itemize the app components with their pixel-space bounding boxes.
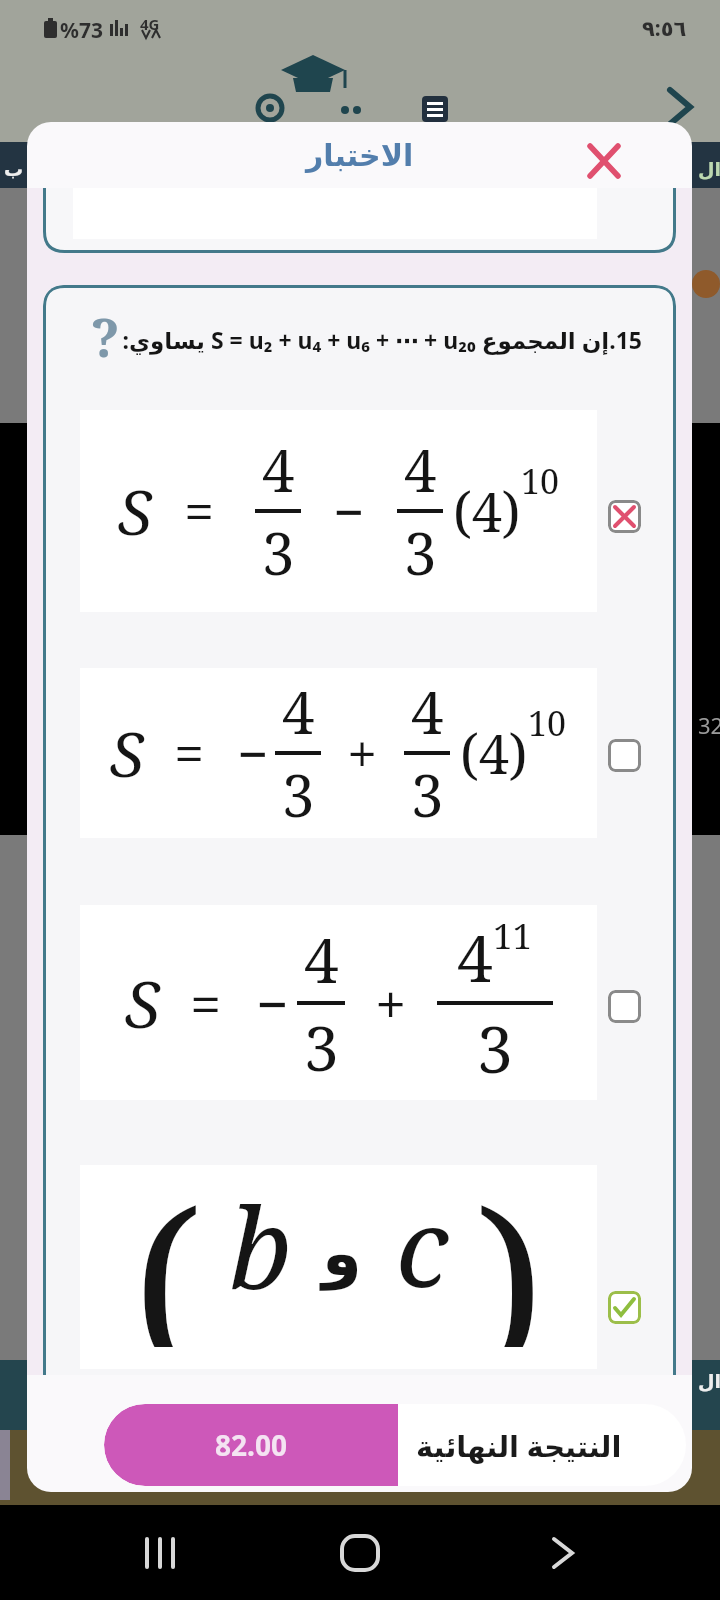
staticText: − xyxy=(256,965,289,1041)
button[interactable] xyxy=(578,136,630,188)
staticText: c xyxy=(396,1172,449,1319)
staticText: ? xyxy=(91,301,120,372)
staticText: %73 xyxy=(60,16,103,45)
staticText: 82.00 xyxy=(215,1426,287,1464)
staticText: ال xyxy=(698,158,720,180)
button[interactable] xyxy=(608,1291,641,1324)
button[interactable] xyxy=(608,739,641,772)
staticText: 15.إن المجموع S = u₂ + u₄ + u₆ + ⋯ + u₂₀… xyxy=(122,324,642,355)
staticText: + xyxy=(375,965,407,1041)
staticText: 3 xyxy=(404,513,437,592)
staticText: 32 xyxy=(698,710,720,740)
staticText: ) xyxy=(475,1143,545,1347)
staticText: 10 xyxy=(521,458,560,504)
staticText: + xyxy=(347,716,378,790)
button[interactable]: S xyxy=(80,410,597,612)
staticText: 4 xyxy=(282,672,315,751)
staticText: ( xyxy=(133,1143,203,1347)
button[interactable]: S xyxy=(80,905,597,1100)
staticText: S xyxy=(125,960,160,1047)
staticText: (4) xyxy=(453,474,521,548)
staticText: 3 xyxy=(477,1005,513,1092)
staticText: النتيجة النهائية xyxy=(416,1426,622,1465)
staticText: 3 xyxy=(262,513,295,592)
staticText: 4G xyxy=(140,14,160,34)
staticText: 4 xyxy=(404,430,437,509)
staticText: (4) xyxy=(460,716,528,790)
staticText: ال xyxy=(698,1370,720,1392)
staticText: ٩:٥٦ xyxy=(642,14,687,43)
staticText: 10 xyxy=(528,700,567,746)
staticText: الاختبار xyxy=(306,138,414,173)
staticText: S xyxy=(110,711,144,795)
staticText: = xyxy=(174,716,205,790)
staticText: 4 xyxy=(457,914,493,1001)
staticText: − xyxy=(333,474,365,548)
button[interactable] xyxy=(340,1534,380,1572)
staticText: 3 xyxy=(282,755,315,834)
button[interactable]: 82.00 xyxy=(104,1404,686,1486)
staticText: 11 xyxy=(493,912,533,960)
staticText: = xyxy=(190,965,222,1041)
staticText: 4 xyxy=(411,672,444,751)
staticText: = xyxy=(184,474,215,548)
staticText: − xyxy=(237,716,269,790)
staticText: 4 xyxy=(304,917,339,1001)
button[interactable]: S xyxy=(80,668,597,838)
button[interactable] xyxy=(608,500,641,533)
button[interactable]: ( xyxy=(80,1165,597,1369)
staticText: b xyxy=(229,1169,292,1322)
staticText: S xyxy=(118,469,152,553)
staticText: 3 xyxy=(304,1005,339,1089)
staticText: و xyxy=(322,1216,362,1291)
staticText: ب xyxy=(4,158,24,180)
staticText: 4 xyxy=(262,430,295,509)
button[interactable] xyxy=(608,990,641,1023)
staticText: 3 xyxy=(411,755,444,834)
